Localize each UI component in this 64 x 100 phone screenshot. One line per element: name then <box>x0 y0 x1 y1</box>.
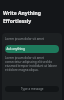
staticText: Write Anything <box>3 10 41 17</box>
staticText: Lorem ipsum dolor sit amet consectetur a… <box>5 56 59 72</box>
button[interactable]: Type a message <box>5 86 59 92</box>
button[interactable]: Ask anything <box>5 45 59 53</box>
staticText: Type a message <box>21 87 44 91</box>
staticText: Lorem ipsum dolor sit amet <box>5 37 44 41</box>
staticText: Effortlessly <box>3 18 32 25</box>
staticText: Ask anything <box>5 47 25 51</box>
